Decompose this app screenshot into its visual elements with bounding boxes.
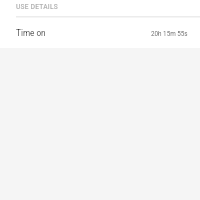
button[interactable]: Time on bbox=[0, 18, 200, 48]
staticText: Time on bbox=[16, 28, 46, 38]
staticText: USE DETAILS bbox=[16, 3, 59, 11]
staticText: 20h 15m 55s bbox=[151, 30, 188, 37]
